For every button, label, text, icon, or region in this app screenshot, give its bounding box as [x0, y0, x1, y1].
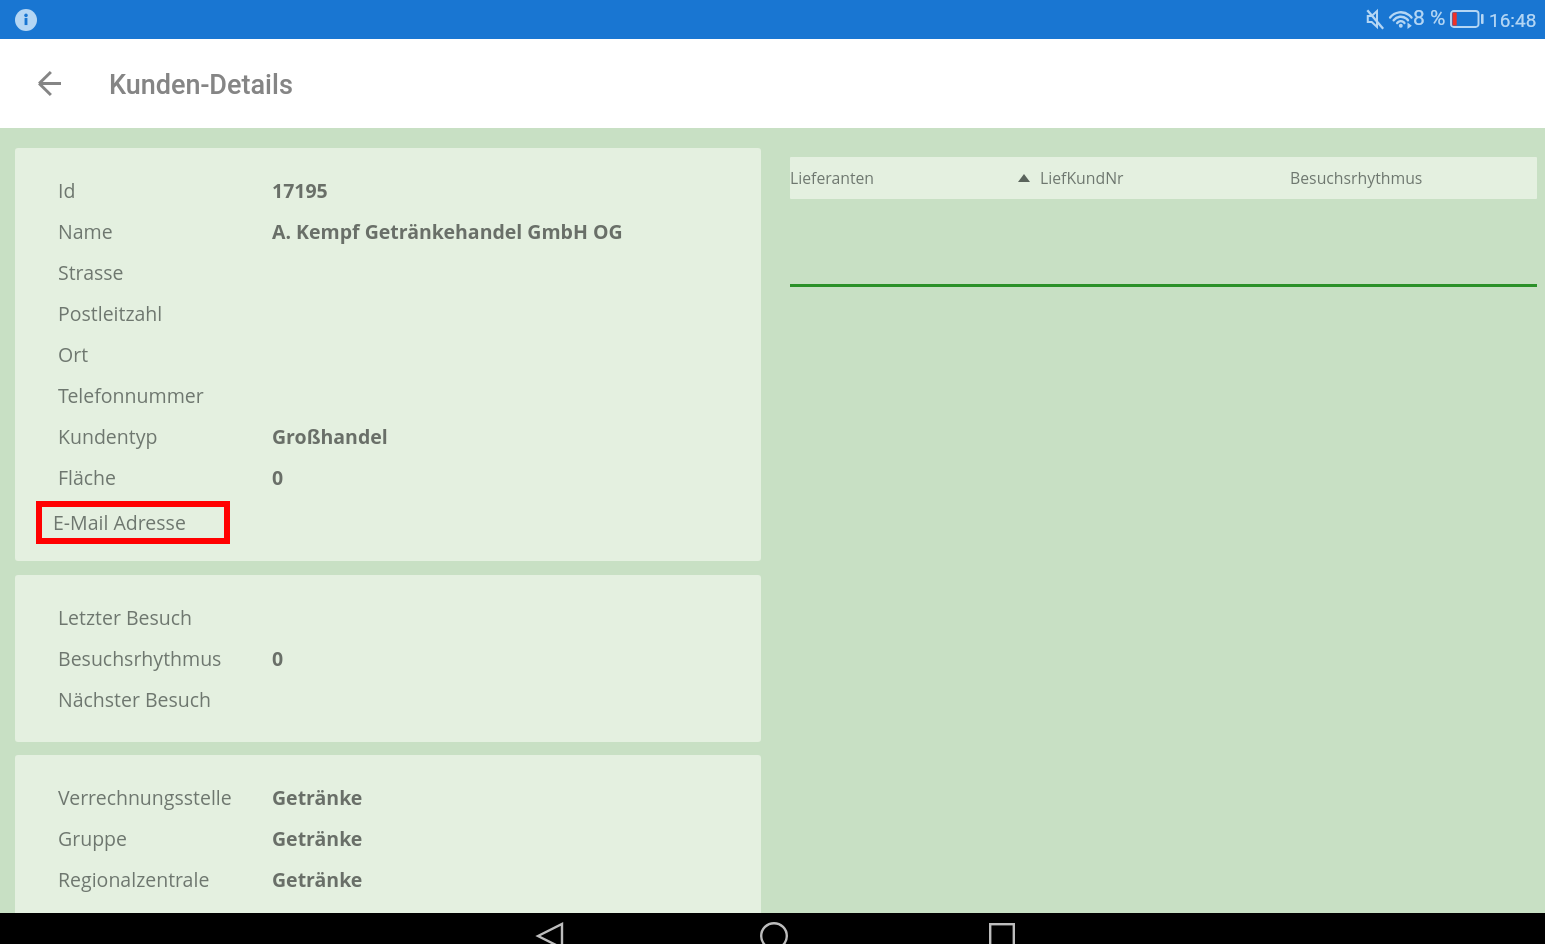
staticText: Verrechnungsstelle	[58, 784, 232, 811]
staticText: E-Mail Adresse	[53, 509, 186, 536]
button[interactable]: Besuchsrhythmus	[15, 638, 761, 679]
button[interactable]: Gruppe	[15, 818, 761, 859]
button[interactable]: Postleitzahl	[15, 293, 761, 334]
button[interactable]: Lieferanten	[790, 157, 1537, 199]
button[interactable]: Name	[15, 211, 761, 252]
button[interactable]: Recent apps	[968, 913, 1036, 944]
staticText: 17195	[272, 177, 328, 204]
button[interactable]: Home	[741, 913, 809, 944]
staticText: Vertriebsgebiet	[58, 907, 197, 934]
staticText: Letzter Besuch	[58, 604, 193, 631]
staticText: Strasse	[58, 259, 124, 286]
staticText: 0	[272, 464, 284, 491]
staticText: Getränke	[272, 825, 363, 852]
staticText: LiefKundNr	[1040, 167, 1124, 189]
staticText: Lieferanten	[790, 167, 875, 189]
button[interactable]: Id	[15, 170, 761, 211]
staticText: 8 %	[1413, 6, 1446, 31]
staticText: Besuchsrhythmus	[58, 645, 222, 672]
button[interactable]: Ort	[15, 334, 761, 375]
button[interactable]: Verrechnungsstelle	[15, 777, 761, 818]
staticText: Id	[58, 177, 76, 204]
staticText: Telefonnummer	[58, 382, 204, 409]
button[interactable]: Vertriebsgebiet	[15, 900, 761, 941]
button[interactable]: E-Mail Adresse	[15, 498, 761, 539]
button[interactable]: Kundentyp	[15, 416, 761, 457]
button[interactable]: Fläche	[15, 457, 761, 498]
staticText: Großhandel	[272, 423, 388, 450]
button[interactable]: Telefonnummer	[15, 375, 761, 416]
staticText: Besuchsrhythmus	[1290, 167, 1423, 189]
staticText: 0	[272, 645, 284, 672]
staticText: Getränke	[272, 784, 363, 811]
staticText: Name	[58, 218, 113, 245]
staticText: Ort	[58, 341, 89, 368]
button[interactable]: Strasse	[15, 252, 761, 293]
staticText: Kunden-Details	[109, 69, 293, 101]
button[interactable]: Nächster Besuch	[15, 679, 761, 720]
staticText: Nächster Besuch	[58, 686, 212, 713]
button[interactable]: Back	[516, 913, 584, 944]
staticText: Getränke	[272, 866, 363, 893]
staticText: Getränke	[272, 907, 363, 934]
staticText: Regionalzentrale	[58, 866, 210, 893]
button[interactable]: Back	[21, 55, 77, 111]
staticText: Postleitzahl	[58, 300, 163, 327]
staticText: 16:48	[1489, 9, 1537, 31]
staticText: Gruppe	[58, 825, 127, 852]
staticText: Fläche	[58, 464, 117, 491]
staticText: A. Kempf Getränkehandel GmbH OG	[272, 218, 623, 245]
button[interactable]: Regionalzentrale	[15, 859, 761, 900]
staticText: Kundentyp	[58, 423, 158, 450]
button[interactable]: Letzter Besuch	[15, 597, 761, 638]
